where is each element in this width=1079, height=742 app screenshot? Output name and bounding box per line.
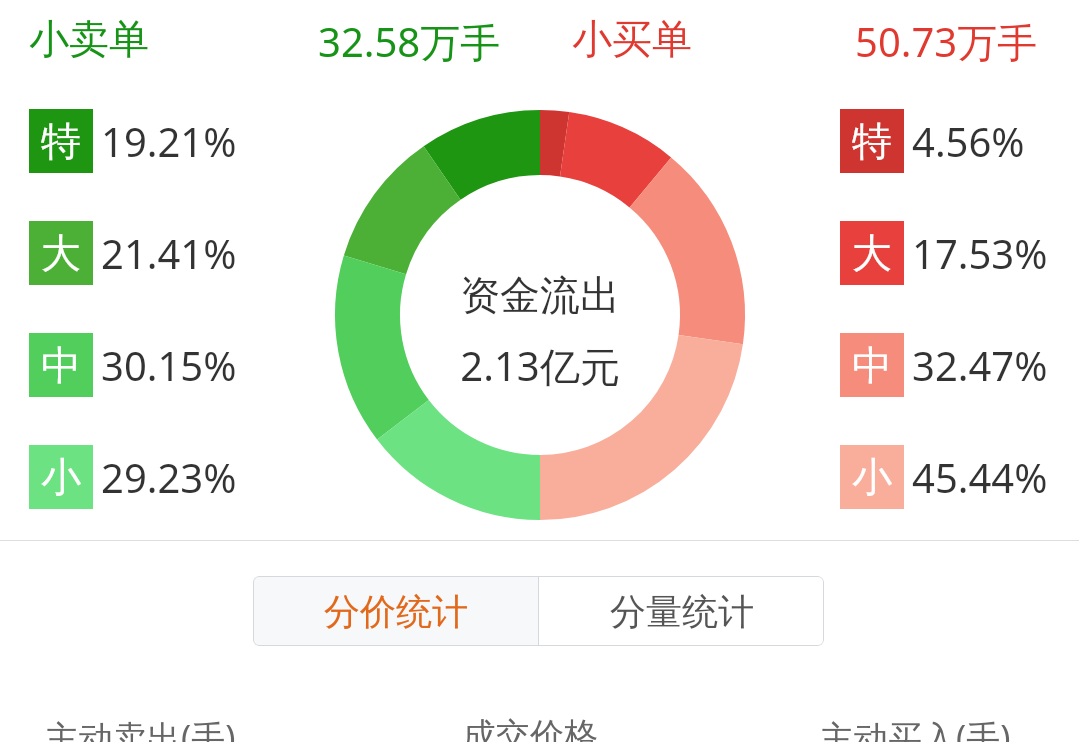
staticText: 小	[41, 452, 81, 502]
staticText: 资金流出	[460, 270, 620, 320]
staticText: 32.58万手	[318, 14, 501, 69]
staticText: 45.44%	[912, 450, 1048, 504]
staticText: 30.15%	[101, 338, 237, 392]
staticText: 17.53%	[912, 226, 1048, 280]
staticText: 21.41%	[101, 226, 237, 280]
staticText: 小卖单	[29, 14, 149, 64]
staticText: 特	[852, 116, 892, 166]
staticText: 主动买入(手)	[820, 714, 1011, 742]
staticText: 中	[852, 340, 892, 390]
staticText: 4.56%	[912, 114, 1025, 168]
staticText: 小	[852, 452, 892, 502]
staticText: 分量统计	[610, 589, 754, 634]
staticText: 50.73万手	[855, 14, 1038, 69]
staticText: 分价统计	[324, 589, 468, 634]
staticText: 成交价格	[462, 714, 598, 742]
staticText: 中	[41, 340, 81, 390]
staticText: 2.13亿元	[460, 338, 620, 393]
staticText: 主动卖出(手)	[45, 714, 236, 742]
staticText: 特	[41, 116, 81, 166]
button[interactable]: 分价统计	[253, 576, 538, 646]
staticText: 大	[852, 228, 892, 278]
staticText: 小买单	[572, 14, 692, 64]
staticText: 19.21%	[101, 114, 237, 168]
staticText: 29.23%	[101, 450, 237, 504]
staticText: 大	[41, 228, 81, 278]
staticText: 32.47%	[912, 338, 1048, 392]
button[interactable]: 分量统计	[539, 576, 824, 646]
